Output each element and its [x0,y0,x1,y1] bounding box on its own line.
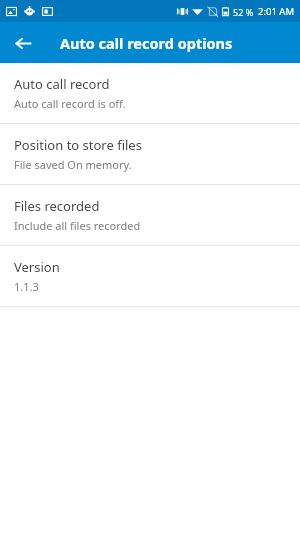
staticText: Auto call record [14,75,110,93]
button[interactable]: Position to store files [0,124,300,184]
staticText: Auto call record options [60,33,233,53]
staticText: File saved On memory. [14,157,132,172]
staticText: Auto call record is off. [14,96,126,111]
staticText: 1.1.3 [14,279,39,294]
staticText: Position to store files [14,136,142,154]
button[interactable]: Auto call record [0,63,300,123]
button[interactable]: Back [10,30,36,56]
button[interactable]: Files recorded [0,185,300,245]
staticText: Files recorded [14,197,100,215]
staticText: 52 % [233,6,254,18]
staticText: 2:01 AM [258,5,295,18]
staticText: Version [14,258,60,276]
button[interactable]: Version [0,246,300,306]
staticText: Include all files recorded [14,218,141,233]
